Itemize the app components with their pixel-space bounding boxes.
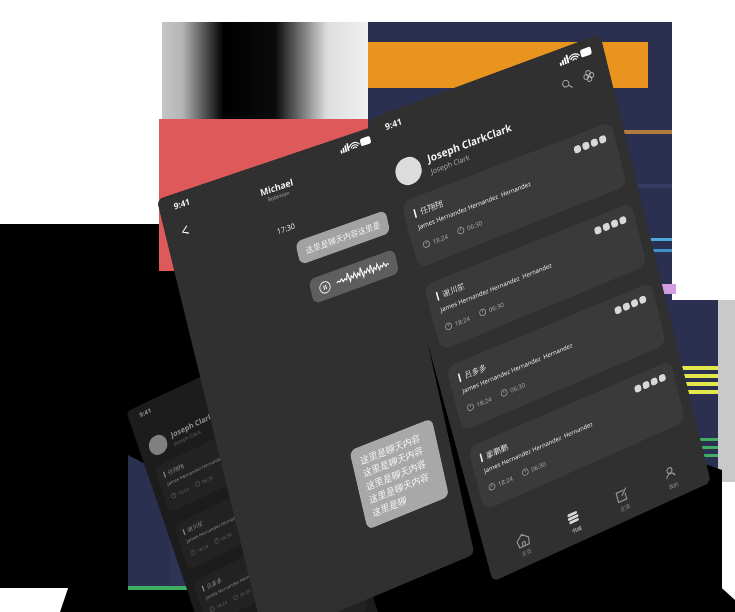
staticText: 任翔翔 (167, 462, 185, 476)
button[interactable]: 书城 (557, 502, 591, 542)
button[interactable]: 这里是聊天内容这里是聊天内容这里是聊天内容这里是聊天内容这里是聊 (349, 418, 449, 530)
staticText: Robinson (267, 189, 290, 204)
button[interactable]: 任翔翔 (401, 121, 627, 269)
staticText: 9:41 (383, 115, 403, 133)
staticText: 这里是聊天内容这里是 (305, 219, 381, 256)
staticText: Joseph ClarkClark (169, 402, 231, 440)
staticText: James Hernandez Hernandez Hernandez (205, 556, 284, 601)
staticText: 主页 (521, 547, 532, 558)
staticText: Joseph Clark (173, 427, 202, 447)
staticText: 06:30 (220, 531, 233, 542)
staticText: Joseph ClarkClark (426, 120, 513, 166)
staticText: 18:24 (475, 394, 493, 409)
staticText: 我的 (668, 480, 679, 491)
staticText: 06:30 (530, 459, 547, 473)
staticText: James Hernandez Hernandez Hernandez (439, 260, 553, 314)
staticText: 18:24 (215, 599, 228, 610)
staticText: 18:24 (497, 473, 514, 488)
staticText: 谢川笙 (441, 280, 466, 299)
button[interactable]: 谢川笙 (423, 202, 647, 351)
staticText: 谢川笙 (186, 519, 204, 534)
staticText: 吕多多 (206, 576, 223, 590)
button[interactable]: 任翔翔 (154, 397, 316, 514)
button[interactable]: 交流 (606, 480, 640, 520)
staticText: Joseph Clark (429, 152, 471, 176)
button[interactable]: 吕多多 (445, 282, 666, 432)
button[interactable]: 我的 (655, 458, 688, 498)
staticText: 18:24 (196, 542, 209, 554)
staticText: James Hernandez Hernandez Hernandez (166, 443, 247, 487)
staticText: 9:41 (172, 195, 191, 212)
staticText: 17:30 (172, 185, 395, 273)
staticText: 廖鹏鹏 (485, 442, 509, 460)
button[interactable]: Search (557, 73, 576, 95)
button[interactable]: 廖鹏鹏 (467, 360, 686, 511)
button[interactable]: Apps (578, 64, 598, 87)
staticText: 书城 (571, 524, 582, 535)
button[interactable]: 谢川笙 (173, 454, 334, 571)
staticText: James Hernandez Hernandez Hernandez (417, 179, 532, 231)
staticText: 06:30 (239, 587, 251, 598)
button[interactable]: 主页 (507, 524, 542, 565)
staticText: 交流 (620, 502, 631, 513)
staticText: James Hernandez Hernandez Hernandez (483, 419, 594, 475)
staticText: James Hernandez Hernandez Hernandez (224, 611, 302, 612)
button[interactable]: Back (177, 221, 193, 239)
staticText: 06:30 (201, 474, 214, 485)
button[interactable]: 吕多多 (193, 509, 352, 612)
button[interactable] (308, 249, 399, 304)
staticText: 这里是聊天内容这里是聊天内容这里是聊天内容这里是聊天内容这里是聊 (359, 429, 440, 519)
staticText: James Hernandez Hernandez Hernandez (461, 340, 574, 395)
staticText: 18:24 (454, 313, 471, 328)
staticText: 06:30 (466, 218, 483, 232)
staticText: James Hernandez Hernandez Hernandez (186, 500, 266, 544)
staticText: 18:24 (177, 485, 190, 496)
button[interactable]: 廖鹏鹏 (212, 565, 369, 612)
staticText: Michael (259, 175, 294, 198)
staticText: 吕多多 (463, 362, 488, 380)
staticText: 18:24 (431, 231, 449, 246)
staticText: 06:30 (509, 380, 526, 394)
staticText: 任翔翔 (419, 198, 444, 216)
button[interactable]: 这里是聊天内容这里是 (295, 210, 391, 265)
staticText: 9:41 (138, 406, 152, 419)
staticText: 06:30 (488, 299, 505, 314)
